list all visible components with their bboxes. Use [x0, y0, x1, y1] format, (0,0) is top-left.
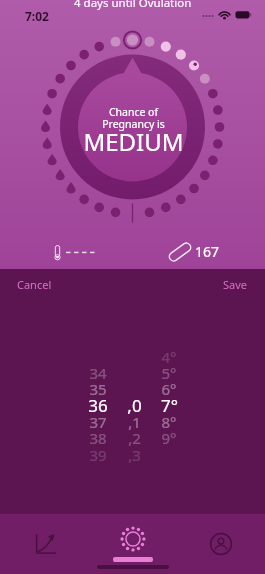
- staticText: 9°: [161, 428, 177, 448]
- staticText: 8°: [161, 412, 177, 432]
- staticText: 39: [89, 445, 107, 465]
- button[interactable]: 4°: [146, 299, 192, 514]
- staticText: 5°: [161, 363, 177, 383]
- staticText: Cancel: [17, 277, 52, 292]
- button[interactable]: Save: [211, 269, 265, 299]
- staticText: 37: [89, 412, 107, 432]
- staticText: 7:02: [25, 8, 49, 24]
- staticText: ,0: [127, 394, 142, 417]
- staticText: MEDIUM: [83, 125, 184, 158]
- staticText: 38: [89, 428, 107, 448]
- staticText: 6°: [161, 379, 177, 399]
- button[interactable]: 34: [75, 299, 121, 514]
- staticText: 35: [89, 379, 107, 399]
- button[interactable]: Cancel: [0, 269, 64, 299]
- button[interactable]: Cycle: [89, 514, 177, 574]
- button[interactable]: Charts: [0, 514, 89, 574]
- staticText: 36: [88, 394, 108, 417]
- staticText: ,3: [128, 445, 141, 465]
- staticText: 34: [89, 363, 107, 383]
- staticText: 7°: [161, 394, 178, 417]
- button[interactable]: Weight: [168, 238, 228, 264]
- button[interactable]: ,0: [111, 299, 157, 514]
- staticText: Chance of Pregnancy is: [102, 105, 165, 131]
- button[interactable]: Profile: [177, 514, 265, 574]
- staticText: Save: [223, 277, 248, 292]
- staticText: 4 days until Ovulation: [74, 0, 192, 11]
- staticText: ,2: [128, 428, 141, 448]
- staticText: ,1: [128, 412, 141, 432]
- button[interactable]: Temperature: [40, 238, 110, 264]
- staticText: 4°: [161, 347, 177, 367]
- staticText: 167: [195, 242, 220, 261]
